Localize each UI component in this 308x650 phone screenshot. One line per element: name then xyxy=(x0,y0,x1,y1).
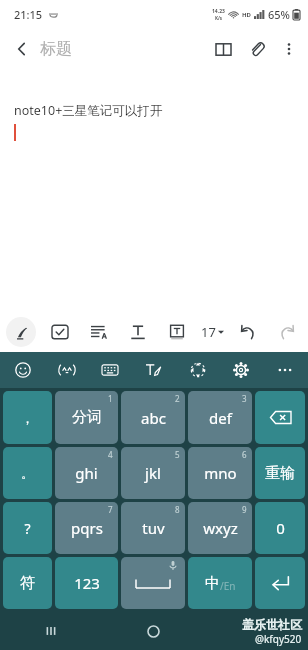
staticText: 7 xyxy=(108,504,113,515)
button[interactable]: jkl xyxy=(121,447,185,499)
button[interactable]: abc xyxy=(121,391,185,444)
staticText: 。 xyxy=(21,465,34,481)
button[interactable]: Insert image xyxy=(162,317,192,347)
staticText: K/s xyxy=(215,15,223,21)
staticText: 123 xyxy=(74,573,100,593)
staticText: 65% xyxy=(268,7,290,22)
staticText: 标题 xyxy=(40,39,72,59)
staticText: 符 xyxy=(20,574,35,593)
button[interactable]: 中 xyxy=(188,557,252,609)
button[interactable]: Enter xyxy=(255,557,305,609)
staticText: 2 xyxy=(175,393,180,404)
button[interactable]: 0 xyxy=(255,502,305,554)
button[interactable]: View mode xyxy=(206,32,240,66)
staticText: 8 xyxy=(175,504,180,515)
button[interactable]: ? xyxy=(3,502,52,554)
staticText: 中 xyxy=(205,574,220,593)
button[interactable]: Handwriting xyxy=(139,355,169,385)
button[interactable]: Settings xyxy=(226,355,256,385)
button[interactable]: Keyboard layout xyxy=(95,355,125,385)
button[interactable]: Home xyxy=(102,612,205,650)
button[interactable]: 重输 xyxy=(255,447,305,499)
staticText: note10+三星笔记可以打开 xyxy=(14,102,163,119)
button[interactable]: Move cursor xyxy=(183,355,213,385)
button[interactable]: Back xyxy=(6,33,38,65)
staticText: 4 xyxy=(108,449,113,460)
button[interactable]: Attach xyxy=(240,32,274,66)
staticText: 1 xyxy=(108,393,113,404)
staticText: pqrs xyxy=(71,518,103,538)
button[interactable]: pqrs xyxy=(55,502,118,554)
button[interactable]: Recents xyxy=(0,612,102,650)
staticText: abc xyxy=(141,408,166,428)
staticText: 17 xyxy=(201,323,216,341)
staticText: @kfqy520 xyxy=(255,632,302,646)
button[interactable]: 分词 xyxy=(55,391,118,444)
staticText: ， xyxy=(21,410,34,426)
button[interactable]: Paragraph style xyxy=(84,317,114,347)
button[interactable]: ， xyxy=(3,391,52,444)
staticText: 重输 xyxy=(265,464,295,483)
button[interactable]: More xyxy=(270,355,300,385)
button[interactable]: Space xyxy=(121,557,185,609)
button[interactable]: 符 xyxy=(3,557,52,609)
button[interactable]: mno xyxy=(188,447,252,499)
button[interactable]: Undo xyxy=(233,317,263,347)
staticText: 3 xyxy=(242,393,247,404)
staticText: /En xyxy=(220,579,236,593)
staticText: mno xyxy=(204,463,237,483)
button[interactable]: Backspace xyxy=(255,391,305,444)
staticText: 14.23 xyxy=(212,8,225,15)
staticText: 5 xyxy=(175,449,180,460)
staticText: wxyz xyxy=(203,518,238,538)
staticText: HD xyxy=(242,11,251,19)
staticText: tuv xyxy=(142,518,165,538)
button[interactable]: 。 xyxy=(3,447,52,499)
button[interactable]: def xyxy=(188,391,252,444)
staticText: 21:15 xyxy=(14,7,43,22)
staticText: 盖乐世社区 xyxy=(242,617,302,632)
staticText: 6 xyxy=(242,449,247,460)
button[interactable]: Text style xyxy=(123,317,153,347)
button[interactable]: 17 xyxy=(201,315,224,349)
staticText: ? xyxy=(24,519,31,538)
button[interactable]: Checklist xyxy=(45,317,75,347)
button[interactable]: Kaomoji xyxy=(52,355,82,385)
staticText: 9 xyxy=(242,504,247,515)
staticText: ghi xyxy=(75,463,98,483)
staticText: 0 xyxy=(276,518,285,538)
button[interactable]: Emoji xyxy=(8,355,38,385)
button[interactable]: ghi xyxy=(55,447,118,499)
button[interactable]: tuv xyxy=(121,502,185,554)
button[interactable]: Pen xyxy=(6,317,36,347)
button[interactable]: Redo xyxy=(272,317,302,347)
button[interactable]: 123 xyxy=(55,557,118,609)
staticText: 分词 xyxy=(72,408,102,427)
staticText: jkl xyxy=(145,463,161,483)
staticText: def xyxy=(209,408,232,428)
button[interactable]: More options xyxy=(274,34,304,64)
button[interactable]: wxyz xyxy=(188,502,252,554)
